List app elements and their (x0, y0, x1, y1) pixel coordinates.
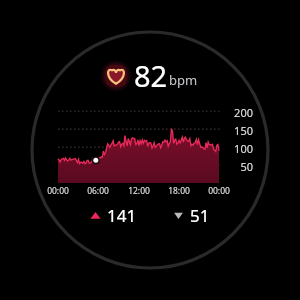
staticText: 51 (190, 204, 210, 226)
staticText: 00:00 (203, 185, 235, 197)
staticText: 06:00 (82, 185, 114, 197)
staticText: bpm (169, 71, 198, 89)
staticText: 200 (223, 105, 253, 120)
button[interactable]: Minimum 51 bpm (170, 203, 213, 227)
staticText: 150 (223, 123, 253, 138)
button[interactable]: Heart rate chart for today (24, 100, 276, 196)
button[interactable]: Maximum 141 bpm (87, 203, 140, 227)
staticText: 00:00 (42, 185, 74, 197)
staticText: 50 (223, 159, 253, 174)
staticText: 100 (223, 141, 253, 156)
staticText: 18:00 (163, 185, 195, 197)
staticText: 141 (107, 204, 137, 226)
button[interactable]: Current heart rate 82 bpm (99, 54, 202, 97)
staticText: 82 (134, 56, 168, 95)
staticText: 12:00 (123, 185, 155, 197)
